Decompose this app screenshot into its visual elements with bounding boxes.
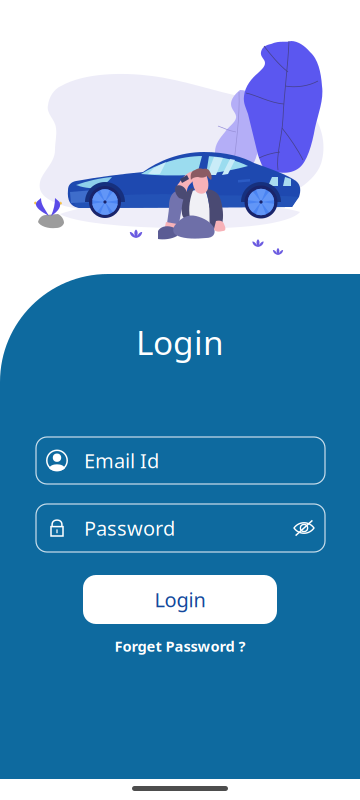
staticText: Forget Password ? (114, 636, 245, 656)
button[interactable]: Email Id (36, 437, 325, 484)
staticText: Login (136, 320, 224, 364)
button[interactable]: Password (36, 504, 325, 552)
staticText: Email Id (84, 447, 159, 474)
staticText: Login (154, 586, 205, 613)
staticText: Password (84, 515, 175, 541)
button[interactable]: Forget Password ? (80, 634, 280, 658)
button[interactable]: Login (83, 575, 277, 624)
